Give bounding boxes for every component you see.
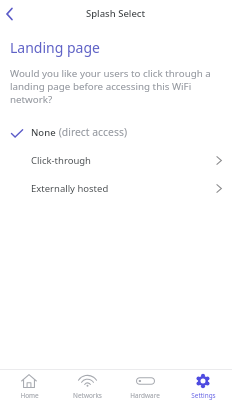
staticText: Networks: [73, 391, 102, 400]
staticText: Landing page: [10, 38, 100, 57]
button[interactable]: Home: [0, 370, 58, 400]
staticText: (direct access): [56, 125, 128, 139]
staticText: Settings: [191, 391, 216, 400]
staticText: Splash Select: [86, 7, 146, 20]
button[interactable]: Settings: [174, 370, 232, 400]
button[interactable]: Click-through: [0, 146, 232, 174]
button[interactable]: Externally hosted: [0, 174, 232, 202]
staticText: None: [31, 126, 56, 139]
staticText: Home: [20, 391, 39, 400]
button[interactable]: None: [0, 118, 232, 146]
staticText: Would you like your users to click throu…: [10, 67, 211, 106]
staticText: Click-through: [31, 154, 91, 167]
button[interactable]: Back: [0, 4, 19, 23]
button[interactable]: Networks: [58, 370, 116, 400]
button[interactable]: Hardware: [116, 370, 174, 400]
staticText: Externally hosted: [31, 182, 109, 195]
staticText: Hardware: [130, 391, 160, 400]
